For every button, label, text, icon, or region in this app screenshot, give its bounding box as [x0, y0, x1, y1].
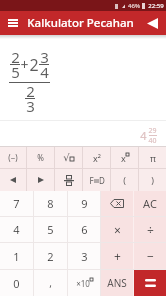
- button[interactable]: 6: [68, 217, 100, 242]
- button[interactable]: ×10: [68, 270, 100, 296]
- button[interactable]: x²: [83, 147, 110, 168]
- staticText: AC: [143, 196, 157, 211]
- button[interactable]: ,: [34, 270, 67, 296]
- staticText: 4: [40, 62, 49, 82]
- button[interactable]: ÷: [134, 217, 166, 242]
- button[interactable]: 3: [68, 243, 100, 269]
- staticText: +: [114, 248, 121, 264]
- staticText: x: [121, 152, 126, 164]
- button[interactable]: 2: [34, 243, 67, 269]
- button[interactable]: (: [111, 169, 138, 191]
- button[interactable]: +: [101, 243, 133, 269]
- staticText: ,: [49, 276, 52, 290]
- button[interactable]: [134, 270, 166, 296]
- staticText: 8: [47, 196, 54, 211]
- button[interactable]: ): [139, 169, 166, 191]
- staticText: 2: [29, 54, 39, 76]
- staticText: −: [147, 248, 154, 264]
- staticText: 29: [148, 126, 157, 136]
- button[interactable]: 4: [0, 217, 33, 242]
- staticText: 2: [26, 81, 35, 101]
- staticText: 22:59: [148, 2, 164, 10]
- staticText: ): [151, 174, 154, 186]
- staticText: (: [123, 174, 126, 186]
- button[interactable]: [101, 191, 133, 216]
- staticText: D: [99, 175, 105, 186]
- staticText: 3: [81, 249, 88, 264]
- button[interactable]: ANS: [101, 270, 133, 296]
- staticText: 3: [40, 47, 49, 67]
- button[interactable]: AC: [134, 191, 166, 216]
- button[interactable]: 0: [0, 270, 33, 296]
- button[interactable]: [27, 169, 54, 191]
- button[interactable]: F: [83, 169, 110, 191]
- staticText: ×10: [76, 278, 90, 289]
- button[interactable]: (−): [0, 147, 26, 168]
- button[interactable]: √: [55, 147, 82, 168]
- staticText: +: [20, 55, 29, 74]
- button[interactable]: %: [27, 147, 54, 168]
- button[interactable]: 9: [68, 191, 100, 216]
- staticText: 4: [13, 222, 20, 237]
- staticText: %: [37, 152, 44, 163]
- staticText: Kalkulator Pecahan: [27, 15, 134, 31]
- staticText: ÷: [147, 222, 154, 238]
- staticText: ×: [114, 222, 121, 238]
- button[interactable]: [6, 16, 20, 30]
- staticText: (−): [8, 152, 18, 163]
- button[interactable]: 5: [34, 217, 67, 242]
- staticText: π: [150, 152, 156, 164]
- button[interactable]: 1: [0, 243, 33, 269]
- staticText: 5: [47, 222, 54, 237]
- staticText: F: [89, 175, 94, 186]
- button[interactable]: [55, 169, 82, 191]
- staticText: 40: [148, 136, 157, 146]
- staticText: ANS: [107, 276, 127, 290]
- button[interactable]: x: [111, 147, 138, 168]
- button[interactable]: π: [139, 147, 166, 168]
- button[interactable]: 7: [0, 191, 33, 216]
- staticText: 7: [13, 196, 20, 211]
- staticText: 2: [47, 249, 54, 264]
- staticText: 9: [81, 196, 88, 211]
- staticText: 6: [81, 222, 88, 237]
- staticText: 0: [13, 276, 20, 291]
- button[interactable]: [0, 169, 26, 191]
- button[interactable]: −: [134, 243, 166, 269]
- staticText: 2: [11, 47, 20, 67]
- staticText: 46%: [128, 2, 140, 10]
- staticText: 4: [140, 128, 147, 143]
- staticText: √: [63, 152, 70, 164]
- staticText: x²: [93, 152, 101, 164]
- staticText: 1: [13, 249, 20, 264]
- button[interactable]: ×: [101, 217, 133, 242]
- staticText: 3: [26, 96, 35, 116]
- staticText: 5: [11, 62, 20, 82]
- button[interactable]: [147, 18, 158, 29]
- button[interactable]: 8: [34, 191, 67, 216]
